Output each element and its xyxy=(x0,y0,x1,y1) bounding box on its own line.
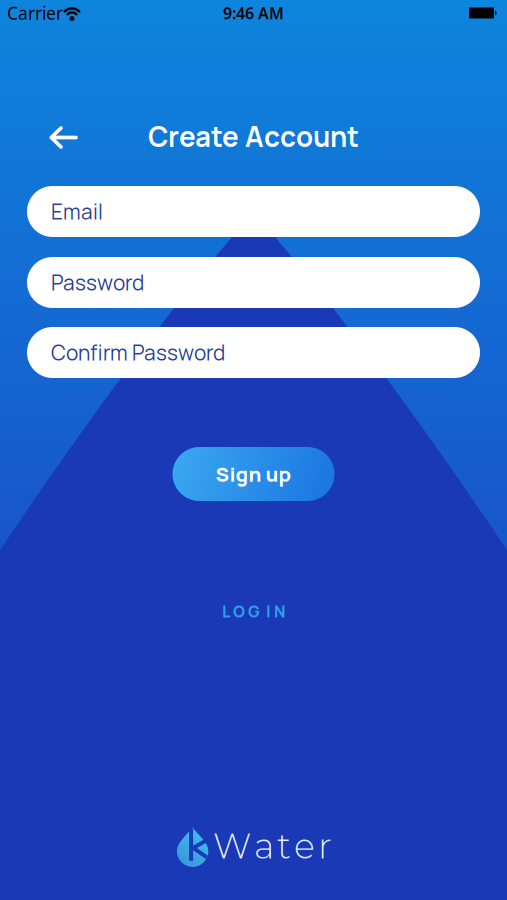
staticText: Carrier xyxy=(7,1,63,24)
button[interactable]: Confirm Password xyxy=(27,327,480,378)
staticText: W a t e r xyxy=(213,825,332,867)
button[interactable]: Password xyxy=(27,257,480,308)
staticText: Email xyxy=(51,197,103,226)
button[interactable]: Email xyxy=(27,186,480,237)
staticText: Create Account xyxy=(148,118,359,155)
button[interactable]: L O G I N xyxy=(198,600,308,622)
staticText: Password xyxy=(51,268,144,297)
staticText: Sign up xyxy=(215,460,291,488)
staticText: 9:46 AM xyxy=(223,2,284,24)
staticText: L O G I N xyxy=(222,601,285,622)
button[interactable]: Sign up xyxy=(172,447,334,501)
staticText: Confirm Password xyxy=(51,338,225,367)
button[interactable]: Back xyxy=(49,126,77,148)
